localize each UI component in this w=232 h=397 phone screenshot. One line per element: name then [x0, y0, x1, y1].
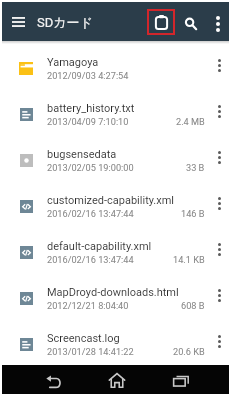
staticText: Yamagoya: [47, 56, 99, 69]
staticText: bugsensedata: [47, 148, 117, 161]
staticText: 2013/02/05 19:00:00: [47, 162, 134, 173]
staticText: 2012/12/21 8:04:40: [47, 300, 129, 311]
button[interactable]: Item options: [210, 148, 228, 166]
staticText: customized-capability.xml: [47, 194, 175, 207]
button[interactable]: Item options: [210, 194, 228, 212]
button[interactable]: MapDroyd-downloads.html: [2, 271, 229, 317]
button[interactable]: Search: [177, 10, 205, 38]
button[interactable]: Back: [38, 369, 68, 394]
staticText: Screencast.log: [47, 332, 120, 345]
button[interactable]: Navigation menu: [8, 11, 29, 32]
staticText: 608 B: [181, 300, 205, 311]
staticText: 2016/02/16 13:47:44: [47, 208, 134, 219]
button[interactable]: Screencast.log: [2, 317, 229, 363]
staticText: 2.4 MB: [176, 116, 205, 127]
button[interactable]: Item options: [210, 332, 228, 350]
staticText: 20.6 KB: [173, 346, 205, 357]
button[interactable]: Item options: [210, 240, 228, 258]
button[interactable]: Item options: [210, 286, 228, 304]
button[interactable]: Item options: [210, 56, 228, 74]
staticText: 33 B: [186, 162, 205, 173]
staticText: MapDroyd-downloads.html: [47, 286, 179, 299]
button[interactable]: bugsensedata: [2, 133, 229, 179]
staticText: 14.1 KB: [173, 254, 205, 265]
button[interactable]: battery_history.txt: [2, 87, 229, 133]
staticText: default-capability.xml: [47, 240, 152, 253]
button[interactable]: Yamagoya: [2, 41, 229, 87]
staticText: 2013/01/28 14:41:22: [47, 346, 134, 357]
button[interactable]: default-capability.xml: [2, 225, 229, 271]
button[interactable]: Clipboard: [147, 9, 175, 35]
button[interactable]: More options: [207, 10, 229, 38]
staticText: 2013/04/09 7:10:10: [47, 116, 129, 127]
button[interactable]: Home: [102, 368, 132, 393]
staticText: battery_history.txt: [47, 102, 135, 115]
staticText: 2016/02/16 13:47:44: [47, 254, 134, 265]
staticText: 2012/09/03 4:27:54: [47, 70, 129, 81]
staticText: 146 B: [181, 208, 205, 219]
staticText: SDカード: [37, 14, 93, 30]
button[interactable]: Item options: [210, 102, 228, 120]
button[interactable]: Recent apps: [167, 368, 194, 393]
button[interactable]: customized-capability.xml: [2, 179, 229, 225]
